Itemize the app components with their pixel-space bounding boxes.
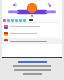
button[interactable]: Category: [15, 19, 18, 22]
button[interactable]: Category: [3, 19, 6, 22]
button[interactable]: [4, 31, 59, 36]
button[interactable]: [4, 24, 59, 29]
button[interactable]: Learn more link: [18, 61, 47, 63]
button[interactable]: Category: [11, 19, 14, 22]
button[interactable]: More: [29, 19, 33, 21]
button[interactable]: Category: [7, 19, 10, 22]
button[interactable]: [2, 38, 62, 44]
button[interactable]: Category: [23, 19, 26, 22]
button[interactable]: Category: [19, 19, 22, 22]
